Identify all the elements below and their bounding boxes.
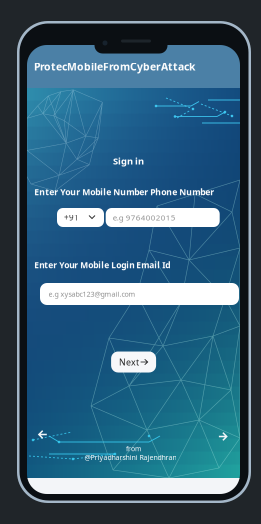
staticText: Enter Your Mobile Number Phone Number xyxy=(34,186,214,198)
button[interactable]: Forward xyxy=(218,432,227,441)
staticText: ProtecMobileFromCyberAttack xyxy=(34,59,195,74)
staticText: Enter Your Mobile Login Email Id xyxy=(34,259,170,271)
button[interactable]: Next xyxy=(111,351,156,372)
staticText: from xyxy=(126,444,141,453)
button[interactable]: e.g xysabc123@gmail.com xyxy=(40,283,239,305)
staticText: e.g xysabc123@gmail.com xyxy=(48,289,135,299)
button[interactable]: e.g 9764002015 xyxy=(106,208,220,227)
staticText: e.g 9764002015 xyxy=(113,212,176,223)
button[interactable]: +91 xyxy=(57,208,104,227)
staticText: Sign in xyxy=(113,155,144,167)
staticText: +91 xyxy=(64,212,79,223)
staticText: @Priyadharshini Rajendhran xyxy=(84,452,176,462)
button[interactable]: Back xyxy=(38,430,47,439)
staticText: Next xyxy=(119,356,139,368)
